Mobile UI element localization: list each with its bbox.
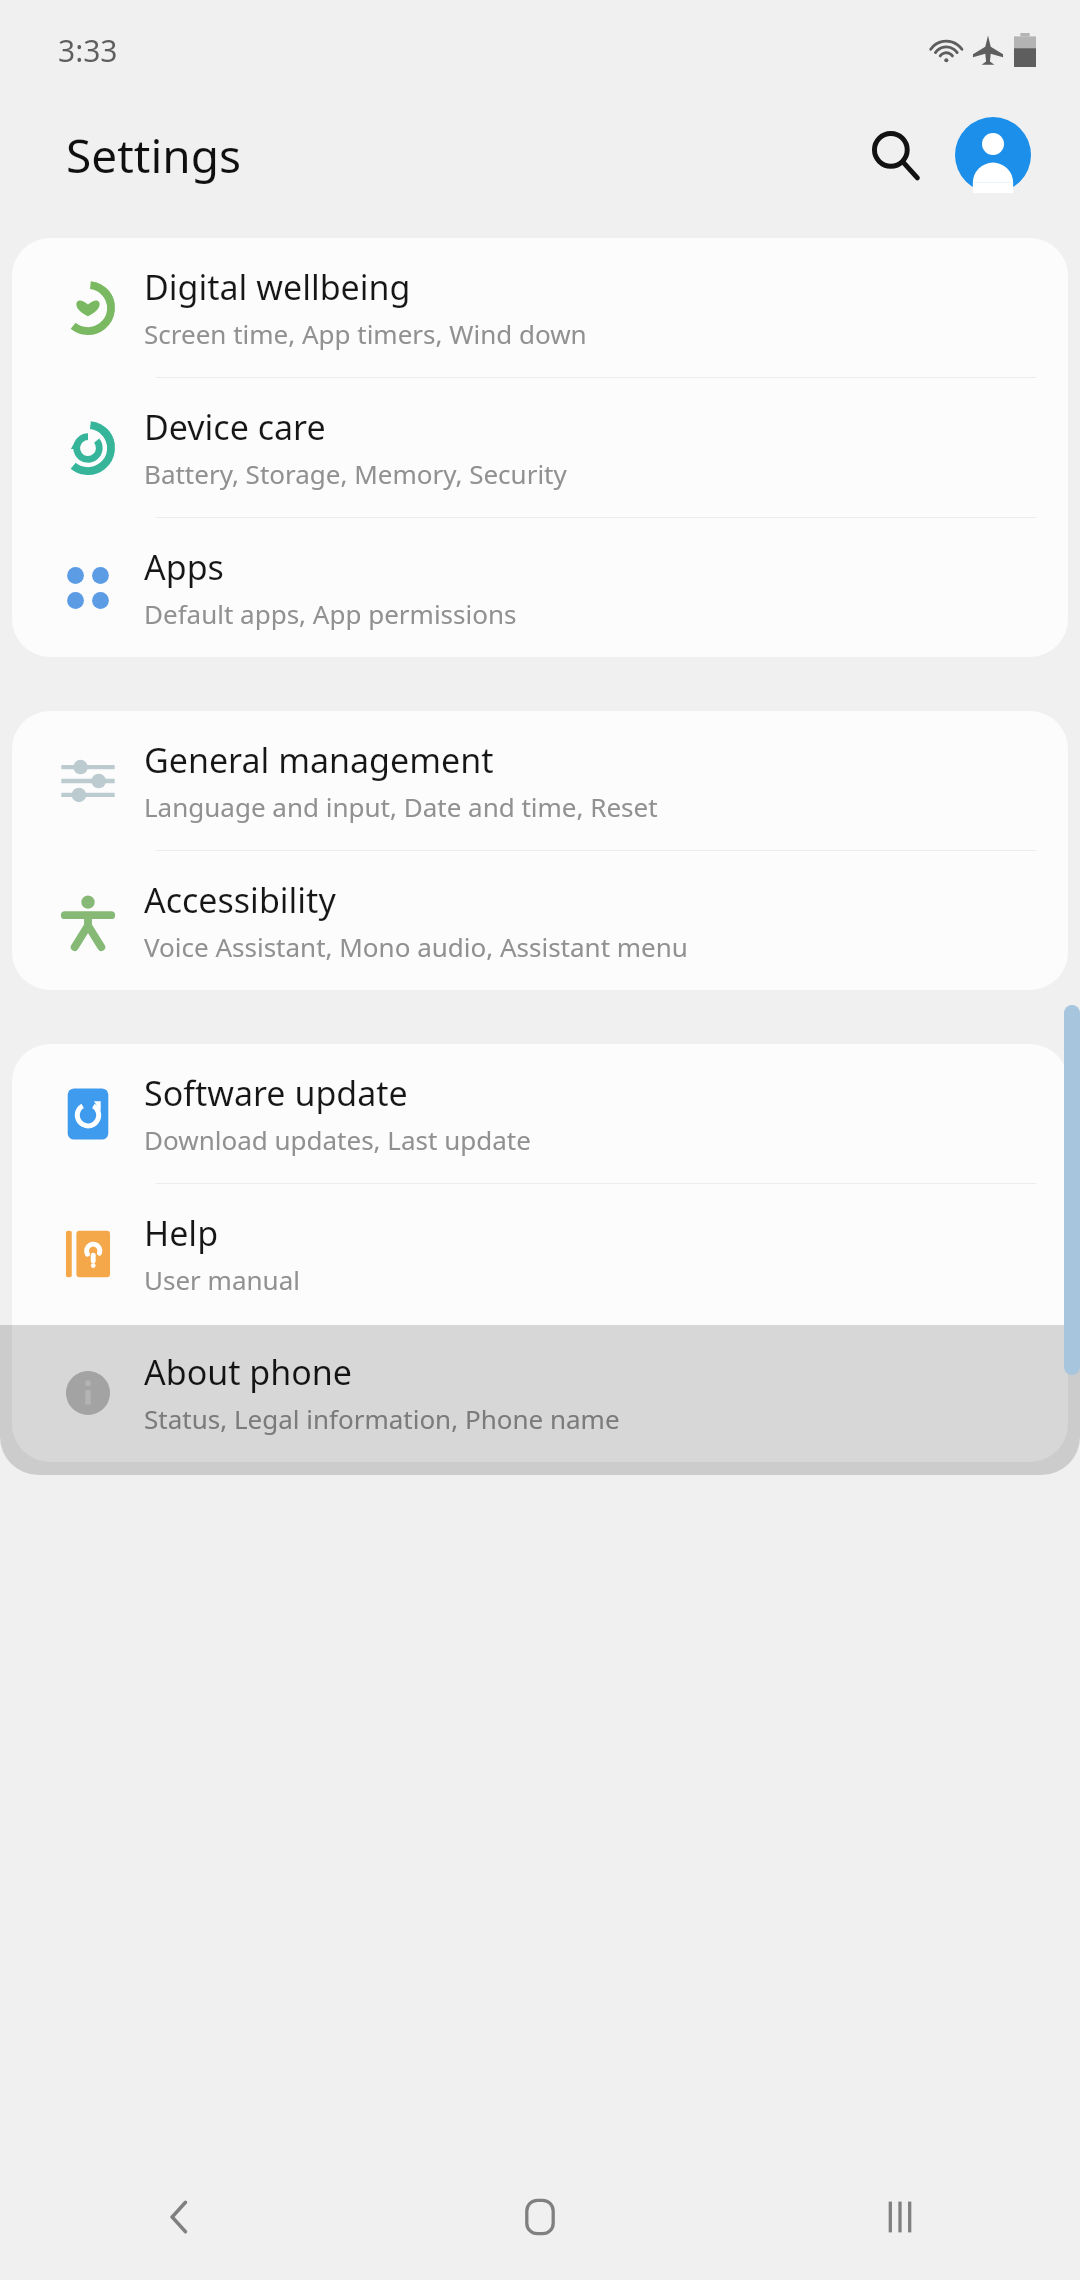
button[interactable]: Apps — [12, 518, 1068, 657]
button[interactable]: Software update — [12, 1044, 1068, 1184]
button[interactable]: Help — [12, 1184, 1068, 1323]
staticText: 3:33 — [58, 30, 118, 71]
button[interactable]: Digital wellbeing — [12, 238, 1068, 378]
button[interactable]: Search — [850, 110, 940, 200]
staticText: Digital wellbeing — [144, 264, 411, 310]
button[interactable]: Home — [360, 2154, 720, 2280]
staticText: About phone — [144, 1349, 353, 1395]
button[interactable]: About phone — [12, 1323, 1068, 1462]
staticText: User manual — [144, 1262, 300, 1297]
staticText: Download updates, Last update — [144, 1122, 531, 1157]
staticText: Settings — [66, 124, 242, 187]
staticText: Voice Assistant, Mono audio, Assistant m… — [144, 929, 688, 964]
button[interactable]: General management — [12, 711, 1068, 851]
button[interactable]: Account — [948, 110, 1038, 200]
button[interactable]: Accessibility — [12, 851, 1068, 990]
button[interactable]: Recents — [720, 2154, 1080, 2280]
staticText: Accessibility — [144, 877, 336, 923]
staticText: Status, Legal information, Phone name — [144, 1401, 620, 1436]
staticText: Device care — [144, 404, 326, 450]
staticText: Software update — [144, 1070, 408, 1116]
staticText: Apps — [144, 544, 224, 590]
staticText: Help — [144, 1210, 219, 1256]
button[interactable] — [0, 1325, 1080, 1475]
staticText: General management — [144, 737, 494, 783]
staticText: Screen time, App timers, Wind down — [144, 316, 587, 351]
staticText: Battery, Storage, Memory, Security — [144, 456, 567, 491]
button[interactable]: Back — [0, 2154, 360, 2280]
staticText: Default apps, App permissions — [144, 596, 517, 631]
button[interactable]: Device care — [12, 378, 1068, 518]
staticText: Language and input, Date and time, Reset — [144, 789, 658, 824]
